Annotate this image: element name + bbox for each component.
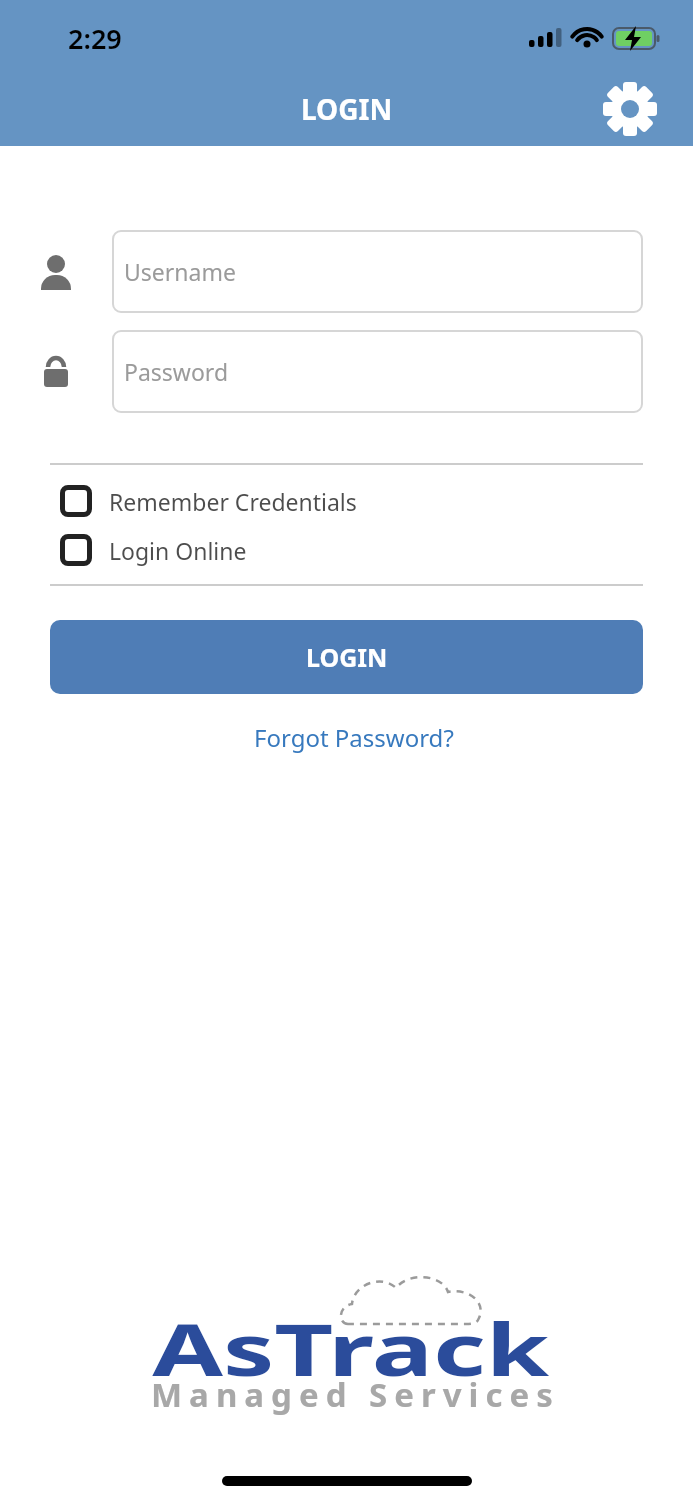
button[interactable]: Password: [112, 330, 643, 413]
staticText: Password: [124, 356, 229, 387]
staticText: Forgot Password?: [254, 721, 454, 754]
staticText: LOGIN: [306, 640, 388, 674]
staticText: AsTrack: [152, 1299, 550, 1397]
button[interactable]: Forgot Password?: [254, 721, 454, 754]
staticText: LOGIN: [301, 90, 393, 128]
button[interactable]: LOGIN: [50, 620, 643, 694]
button[interactable]: Remember Credentials: [60, 485, 357, 517]
staticText: 2:29: [68, 20, 122, 57]
staticText: Managed Services: [151, 1372, 560, 1417]
button[interactable]: [602, 81, 658, 137]
button[interactable]: Login Online: [60, 534, 247, 566]
staticText: Remember Credentials: [109, 486, 357, 517]
staticText: Login Online: [109, 535, 247, 566]
staticText: Username: [124, 256, 236, 287]
button[interactable]: Username: [112, 230, 643, 313]
